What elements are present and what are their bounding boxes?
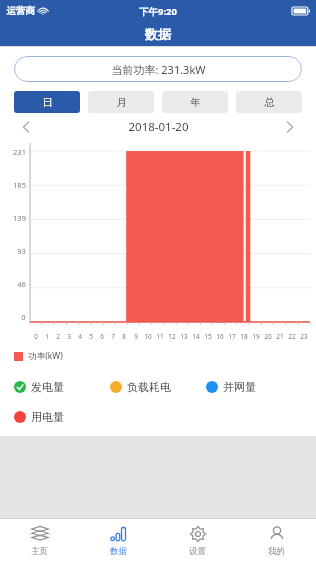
other: Profile — [268, 525, 286, 543]
staticText: 13 — [180, 332, 188, 341]
button[interactable]: 负载耗电 — [110, 380, 206, 394]
staticText: 年 — [190, 96, 201, 109]
staticText: 6 — [100, 332, 104, 341]
staticText: 12 — [168, 332, 176, 341]
button[interactable]: Next day — [278, 115, 302, 139]
button[interactable]: 并网量 — [206, 380, 302, 394]
staticText: 16 — [216, 332, 224, 341]
staticText: 总 — [264, 96, 275, 109]
staticText: 发电量 — [31, 380, 64, 394]
staticText: 设置 — [189, 546, 206, 557]
button[interactable]: Home — [0, 519, 79, 562]
staticText: 日 — [42, 96, 53, 109]
button[interactable]: 日 — [14, 91, 80, 113]
staticText: 7 — [111, 332, 115, 341]
staticText: 0 — [34, 332, 38, 341]
staticText: 9 — [134, 332, 138, 341]
staticText: 20 — [264, 332, 272, 341]
other: Data — [110, 525, 128, 543]
staticText: 我的 — [268, 546, 285, 557]
staticText: 运营商 — [6, 5, 35, 17]
staticText: 负载耗电 — [127, 380, 171, 394]
staticText: 数据 — [110, 546, 127, 557]
button[interactable]: Settings — [158, 519, 237, 562]
staticText: 4 — [78, 332, 82, 341]
button[interactable]: Profile — [237, 519, 316, 562]
button[interactable]: 月 — [88, 91, 154, 113]
staticText: 23 — [300, 332, 308, 341]
staticText: 月 — [116, 96, 127, 109]
other: Home — [31, 525, 49, 543]
staticText: 2 — [56, 332, 60, 341]
button[interactable]: 总 — [236, 91, 302, 113]
staticText: 14 — [192, 332, 200, 341]
staticText: 0 — [21, 312, 26, 322]
staticText: 10 — [144, 332, 152, 341]
staticText: 231 — [13, 147, 26, 157]
staticText: 185 — [13, 180, 26, 190]
staticText: 22 — [288, 332, 296, 341]
staticText: 3 — [67, 332, 71, 341]
staticText: 139 — [13, 213, 26, 223]
staticText: 18 — [240, 332, 248, 341]
button[interactable]: 发电量 — [14, 380, 110, 394]
staticText: 21 — [276, 332, 284, 341]
staticText: 主页 — [31, 546, 48, 557]
staticText: 93 — [17, 246, 26, 256]
staticText: 19 — [252, 332, 260, 341]
staticText: 功率(kW) — [28, 350, 63, 362]
button[interactable]: 用电量 — [14, 410, 110, 424]
staticText: 2018-01-20 — [128, 119, 189, 135]
button[interactable]: Data — [79, 519, 158, 562]
button[interactable]: 当前功率: 231.3kW — [14, 56, 302, 82]
staticText: 5 — [89, 332, 93, 341]
staticText: 46 — [17, 279, 26, 289]
staticText: 8 — [122, 332, 126, 341]
staticText: 11 — [156, 332, 164, 341]
staticText: 数据 — [145, 26, 171, 42]
staticText: 用电量 — [31, 410, 64, 424]
button[interactable]: Previous day — [14, 115, 38, 139]
staticText: 17 — [228, 332, 236, 341]
staticText: 1 — [45, 332, 49, 341]
staticText: 并网量 — [223, 380, 256, 394]
staticText: 下午9:20 — [139, 5, 177, 18]
staticText: 当前功率: 231.3kW — [111, 62, 206, 77]
staticText: 15 — [204, 332, 212, 341]
button[interactable]: 年 — [162, 91, 228, 113]
other: Settings — [189, 525, 207, 543]
